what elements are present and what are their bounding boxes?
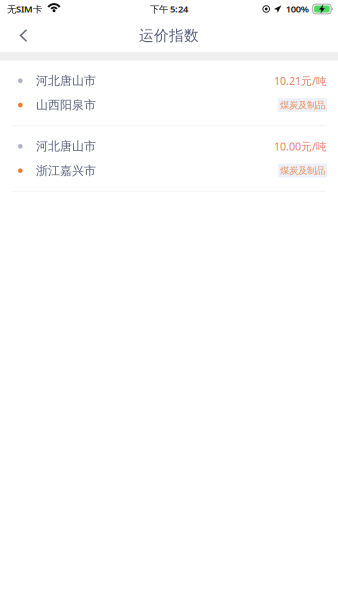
button[interactable]: 返回 bbox=[0, 19, 47, 52]
staticText: 浙江嘉兴市 bbox=[36, 163, 96, 178]
staticText: 山西阳泉市 bbox=[36, 98, 96, 112]
staticText: 河北唐山市 bbox=[36, 139, 96, 154]
staticText: 100% bbox=[286, 3, 309, 15]
staticText: 河北唐山市 bbox=[36, 73, 96, 88]
button[interactable]: 河北唐山市 bbox=[0, 126, 338, 191]
staticText: 10.21元/吨 bbox=[274, 74, 327, 88]
staticText: 煤炭及制品 bbox=[280, 99, 325, 111]
staticText: 煤炭及制品 bbox=[280, 165, 325, 176]
button[interactable]: 河北唐山市 bbox=[0, 61, 338, 125]
staticText: 运价指数 bbox=[139, 26, 199, 44]
staticText: 无SIM卡 bbox=[7, 3, 42, 15]
staticText: 下午 5:24 bbox=[150, 3, 188, 15]
staticText: 10.00元/吨 bbox=[274, 139, 327, 153]
